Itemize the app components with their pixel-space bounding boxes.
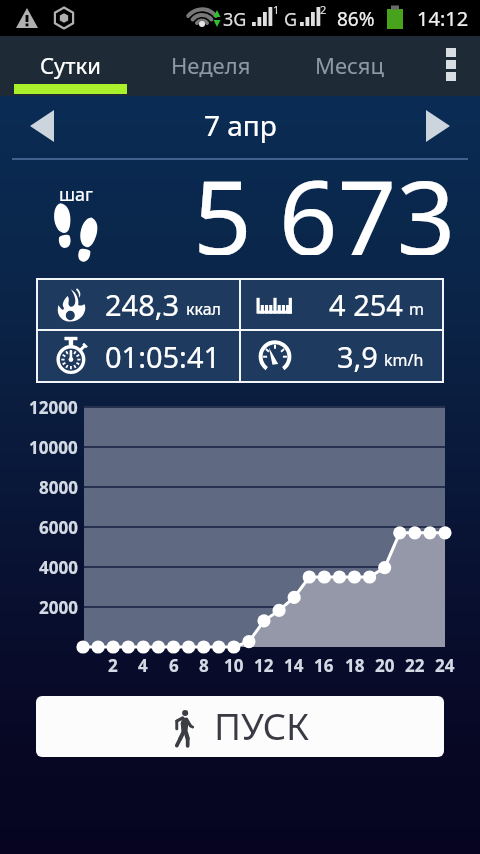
staticText: ккал: [186, 298, 221, 320]
staticText: 3G: [223, 7, 247, 32]
staticText: 10: [224, 654, 244, 677]
staticText: 20: [375, 654, 395, 677]
staticText: m: [409, 298, 424, 320]
staticText: 16: [314, 654, 334, 677]
staticText: 18: [345, 654, 365, 677]
staticText: 4: [138, 654, 148, 677]
staticText: 5 673: [193, 145, 456, 255]
button[interactable]: Next day: [412, 102, 464, 154]
staticText: 3,9: [337, 337, 378, 376]
staticText: 86%: [337, 6, 375, 32]
staticText: 6000: [39, 516, 78, 539]
staticText: 14:12: [417, 5, 469, 32]
button[interactable]: Неделя: [141, 36, 281, 96]
staticText: 8000: [39, 476, 78, 499]
button[interactable]: 3,9: [241, 331, 442, 381]
staticText: Сутки: [40, 50, 101, 80]
staticText: G: [284, 7, 298, 32]
button[interactable]: 4 254: [241, 280, 442, 329]
staticText: 24: [435, 654, 455, 677]
staticText: 22: [405, 654, 425, 677]
staticText: 6: [169, 654, 179, 677]
staticText: 2: [320, 2, 327, 17]
staticText: 8: [199, 654, 209, 677]
button[interactable]: Previous day: [16, 102, 68, 154]
staticText: Месяц: [315, 50, 384, 80]
staticText: шаг: [59, 182, 93, 207]
staticText: km/h: [384, 349, 424, 371]
button[interactable]: Сутки: [0, 36, 141, 96]
staticText: 01:05:41: [105, 337, 221, 376]
staticText: 12: [254, 654, 274, 677]
staticText: 2000: [39, 596, 78, 619]
staticText: 1: [273, 2, 280, 17]
button[interactable]: Месяц: [281, 36, 417, 96]
button[interactable]: 248,3: [38, 280, 239, 329]
staticText: 4000: [39, 556, 78, 579]
staticText: 12000: [29, 396, 78, 419]
staticText: ПУСК: [214, 700, 310, 750]
staticText: 14: [284, 654, 304, 677]
staticText: Неделя: [171, 50, 251, 80]
staticText: 2: [108, 654, 118, 677]
button[interactable]: More options: [430, 36, 472, 96]
staticText: 7 апр: [204, 106, 277, 144]
button[interactable]: 01:05:41: [38, 331, 239, 381]
staticText: 4 254: [329, 285, 403, 324]
staticText: 248,3: [105, 285, 180, 324]
staticText: 10000: [29, 436, 78, 459]
button[interactable]: ПУСК: [36, 696, 444, 757]
